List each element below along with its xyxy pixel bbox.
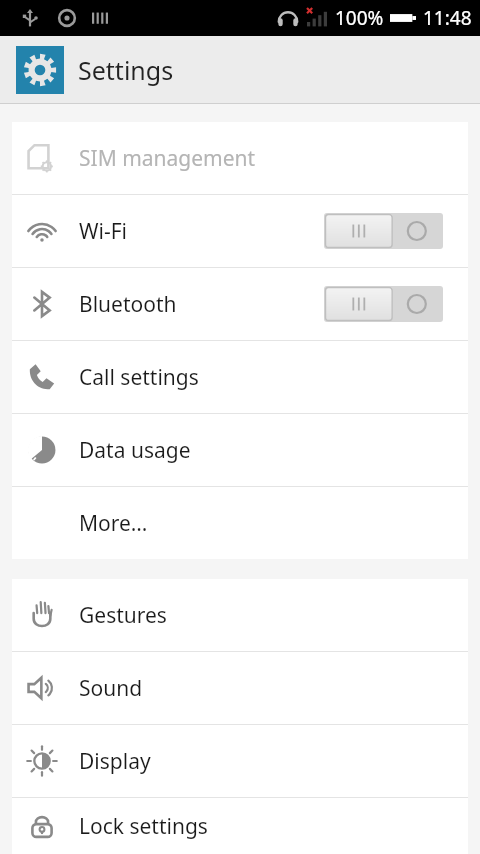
staticText: Display [79, 747, 151, 776]
staticText: Gestures [79, 601, 167, 630]
staticText: Settings [78, 53, 174, 87]
staticText: More… [79, 509, 148, 538]
button[interactable]: Bluetooth toggle [324, 286, 443, 322]
staticText: Bluetooth [79, 290, 177, 319]
staticText: Data usage [79, 436, 191, 465]
button[interactable]: Display [12, 725, 468, 797]
button[interactable]: Bluetooth [12, 268, 468, 340]
button[interactable]: Sound [12, 652, 468, 724]
button[interactable]: Gestures [12, 579, 468, 651]
staticText: Sound [79, 674, 143, 703]
button[interactable]: Lock settings [12, 798, 468, 854]
button[interactable]: Wi-Fi [12, 195, 468, 267]
button[interactable]: Data usage [12, 414, 468, 486]
staticText: Wi-Fi [79, 217, 128, 246]
button[interactable]: SIM management [12, 122, 468, 194]
staticText: Lock settings [79, 812, 208, 841]
staticText: Call settings [79, 363, 199, 392]
staticText: SIM management [79, 144, 256, 173]
staticText: 11:48 [423, 5, 472, 31]
button[interactable]: Wi-Fi toggle [324, 213, 443, 249]
button[interactable]: Call settings [12, 341, 468, 413]
staticText: 100% [335, 5, 384, 31]
button[interactable]: More… [12, 487, 468, 559]
